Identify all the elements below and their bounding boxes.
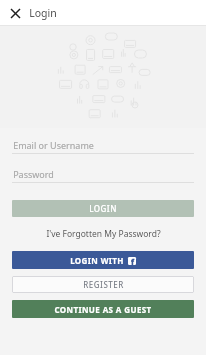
staticText: CONTINUE AS A GUEST [54, 304, 152, 315]
button[interactable]: LOGIN WITH [12, 251, 194, 269]
staticText: Password [13, 168, 54, 180]
button[interactable]: CONTINUE AS A GUEST [12, 300, 194, 318]
button[interactable]: Close [4, 2, 26, 24]
staticText: Email or Username [13, 139, 94, 151]
staticText: LOGIN WITH [70, 255, 124, 266]
button[interactable]: Password [12, 166, 194, 183]
button[interactable]: LOGIN [12, 200, 194, 217]
button[interactable]: I've Forgotten My Password? [0, 227, 206, 240]
staticText: REGISTER [83, 279, 124, 290]
button[interactable]: Email or Username [12, 137, 194, 154]
button[interactable]: REGISTER [12, 276, 194, 293]
staticText: Login [29, 6, 57, 20]
staticText: I've Forgotten My Password? [46, 228, 161, 240]
staticText: LOGIN [89, 203, 117, 214]
